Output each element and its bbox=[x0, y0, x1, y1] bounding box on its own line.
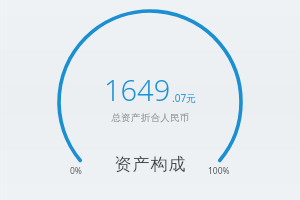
button[interactable]: 0% bbox=[68, 163, 84, 179]
staticText: 0% bbox=[70, 165, 82, 177]
button[interactable]: 资产构成 bbox=[108, 152, 192, 177]
staticText: 100% bbox=[208, 165, 230, 177]
button[interactable]: 100% bbox=[206, 163, 232, 179]
staticText: 总资产折合人民币 bbox=[111, 112, 190, 124]
button[interactable]: 1649 bbox=[0, 0, 300, 200]
staticText: 资产构成 bbox=[114, 154, 186, 175]
staticText: 1649 bbox=[104, 70, 171, 109]
staticText: .07元 bbox=[172, 91, 197, 105]
other: Asset gauge bbox=[0, 0, 300, 200]
